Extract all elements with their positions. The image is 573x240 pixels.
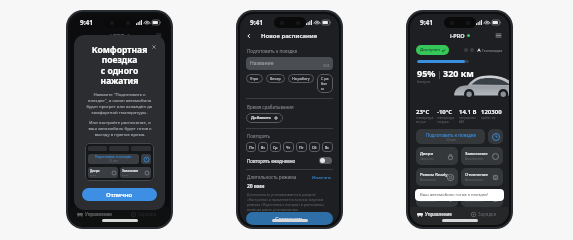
staticText: Вс bbox=[325, 145, 330, 150]
staticText: 9:41 bbox=[250, 18, 263, 27]
staticText: Закрыты bbox=[420, 157, 434, 161]
staticText: i-PRO bbox=[450, 32, 465, 39]
button[interactable]: Зарядки bbox=[459, 207, 509, 221]
staticText: Геолокация bbox=[482, 48, 503, 53]
button[interactable]: Доступен bbox=[416, 45, 449, 55]
staticText: 20 мин bbox=[109, 159, 118, 163]
button[interactable]: Закрыть bbox=[151, 44, 157, 50]
button[interactable]: Меню bbox=[495, 32, 502, 39]
staticText: Прогрев bbox=[420, 193, 438, 199]
staticText: Ср bbox=[273, 145, 278, 150]
button[interactable]: Вт bbox=[258, 142, 268, 152]
staticText: 20 мин bbox=[247, 183, 265, 190]
staticText: 320 км bbox=[443, 67, 474, 79]
button[interactable]: Меню bbox=[155, 32, 162, 39]
staticText: Ваш автомобиль готов к поездке! bbox=[420, 192, 489, 198]
button[interactable]: Расписание bbox=[488, 129, 503, 144]
staticText: Двери bbox=[420, 151, 434, 157]
button[interactable]: Режим Ready bbox=[416, 168, 458, 186]
staticText: Управление bbox=[425, 211, 452, 217]
staticText: Выкл bbox=[122, 173, 129, 176]
button[interactable]: С работы bbox=[317, 74, 333, 93]
button[interactable]: Отлично bbox=[82, 188, 157, 201]
button[interactable]: Сб bbox=[309, 142, 320, 152]
staticText: Добавить bbox=[251, 115, 271, 121]
button[interactable]: Прогрев bbox=[416, 189, 458, 207]
staticText: с одного нажатия bbox=[82, 65, 157, 86]
staticText: 9:41 bbox=[80, 18, 93, 27]
staticText: Выключено bbox=[465, 199, 484, 203]
staticText: ◈ Геолокация bbox=[136, 49, 163, 54]
staticText: Отопление bbox=[465, 172, 488, 178]
button[interactable]: Управление bbox=[410, 207, 459, 221]
staticText: Комфортная поездка bbox=[82, 44, 157, 65]
staticText: Сохранить bbox=[275, 215, 304, 222]
staticText: Новое расписание bbox=[261, 32, 318, 40]
staticText: Повторять bbox=[247, 133, 271, 139]
staticText: Нажмите "Подготовить к поездке", и салон… bbox=[85, 91, 154, 115]
staticText: температура снаружи bbox=[437, 116, 455, 124]
staticText: Подготовить к поездке bbox=[247, 48, 298, 54]
staticText: Длительность устанавливается в разделе «… bbox=[247, 192, 332, 212]
staticText: Зарядки bbox=[138, 211, 157, 217]
staticText: 120300 bbox=[481, 108, 502, 116]
staticText: Сб bbox=[312, 145, 317, 150]
staticText: 0/25 bbox=[323, 64, 330, 68]
staticText: температура внутри bbox=[416, 116, 434, 124]
button[interactable]: На работу bbox=[288, 74, 314, 83]
staticText: 95% bbox=[417, 67, 436, 79]
staticText: Выключено bbox=[465, 157, 484, 161]
staticText: Подготовить к поездке bbox=[426, 132, 476, 138]
button[interactable]: Сохранить bbox=[246, 212, 333, 225]
staticText: Изменить bbox=[312, 175, 332, 180]
staticText: Повторять ежедневно bbox=[247, 158, 296, 164]
staticText: Отлично bbox=[106, 191, 133, 199]
button[interactable]: Пт bbox=[296, 142, 307, 152]
button[interactable]: Изменить bbox=[312, 175, 332, 180]
staticText: На работу bbox=[292, 76, 310, 81]
staticText: Пн bbox=[249, 145, 254, 150]
button[interactable]: Двери bbox=[416, 147, 458, 165]
staticText: Ок bbox=[94, 125, 100, 131]
staticText: Режим Ready bbox=[420, 172, 448, 178]
button[interactable]: Отопление bbox=[461, 168, 503, 186]
staticText: Подготовить к поездке bbox=[95, 155, 132, 159]
staticText: -10°C bbox=[437, 108, 453, 116]
button[interactable]: Ср bbox=[270, 142, 281, 152]
staticText: Выключено bbox=[465, 178, 484, 182]
button[interactable]: Добавить bbox=[246, 113, 283, 123]
button[interactable]: Назад bbox=[246, 33, 252, 39]
staticText: 9:41 bbox=[420, 18, 433, 27]
button[interactable]: Управление bbox=[70, 207, 119, 221]
button[interactable]: Зажигание bbox=[461, 147, 503, 165]
staticText: Охлаждение bbox=[465, 193, 492, 199]
staticText: Зарядки bbox=[478, 211, 497, 217]
staticText: 14.1 В bbox=[459, 108, 477, 116]
staticText: Выключен bbox=[420, 178, 437, 182]
button[interactable]: Повторять ежедневно bbox=[247, 157, 332, 164]
staticText: Утро bbox=[250, 76, 259, 81]
staticText: Off bbox=[123, 125, 130, 131]
button[interactable]: Пн bbox=[246, 142, 256, 152]
button[interactable]: Название bbox=[246, 57, 333, 70]
staticText: пробег, км bbox=[481, 116, 496, 120]
staticText: Пт bbox=[299, 145, 304, 150]
staticText: 20 мин bbox=[446, 138, 457, 142]
button[interactable]: Вс bbox=[322, 142, 333, 152]
staticText: Управление bbox=[85, 211, 112, 217]
button[interactable]: Подготовить к поездке bbox=[416, 129, 485, 144]
staticText: Выкл bbox=[90, 173, 97, 176]
staticText: Чт bbox=[286, 145, 291, 150]
button[interactable]: Вечер bbox=[266, 74, 285, 83]
button[interactable]: Охлаждение bbox=[461, 189, 503, 207]
staticText: напряжение АКБ bbox=[459, 116, 476, 124]
staticText: Вт bbox=[261, 145, 266, 150]
button[interactable]: Чт bbox=[283, 142, 294, 152]
button[interactable]: Утро bbox=[246, 74, 263, 83]
staticText: Вечер bbox=[270, 76, 281, 81]
button[interactable]: Зарядки bbox=[119, 207, 169, 221]
